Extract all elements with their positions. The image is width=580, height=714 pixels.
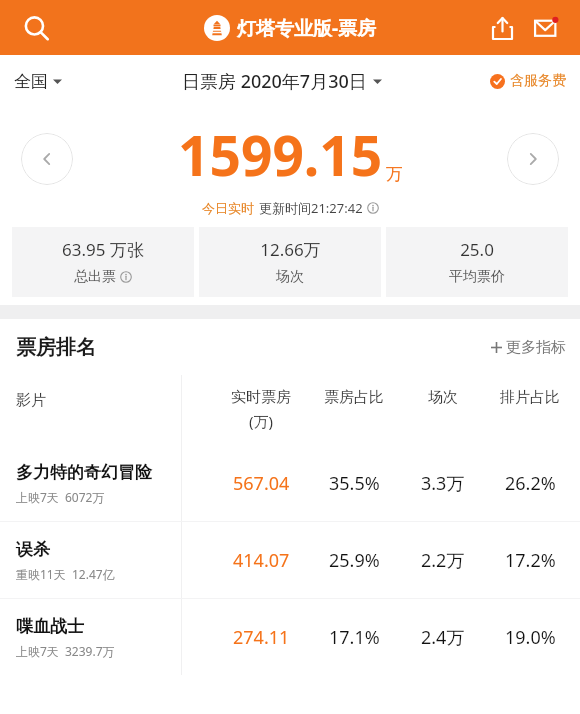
staticText: 12.47亿 (72, 566, 115, 582)
button[interactable]: 多力特的奇幻冒险 (0, 445, 580, 521)
staticText: 场次 (428, 388, 458, 407)
staticText: 场次 (276, 268, 304, 286)
staticText: 重映11天 (16, 566, 66, 582)
button[interactable]: 25.0 (386, 227, 568, 297)
staticText: 含服务费 (510, 72, 566, 90)
staticText: 实时票房 (231, 388, 291, 407)
staticText: 票房占比 (324, 388, 384, 407)
staticText: 12.66万 (260, 238, 321, 261)
staticText: 总出票 (74, 268, 116, 286)
staticText: 567.04 (233, 471, 290, 496)
button[interactable]: 日票房 2020年7月30日 (182, 69, 382, 94)
staticText: 影片 (16, 391, 46, 410)
staticText: 19.0% (505, 625, 556, 650)
staticText: 2.2万 (421, 548, 465, 573)
button[interactable]: 全国 (14, 71, 62, 92)
button[interactable]: Messages (524, 6, 568, 50)
staticText: 26.2% (505, 471, 556, 496)
staticText: 今日实时 (202, 200, 254, 216)
staticText: 票房排名 (16, 335, 96, 360)
staticText: 6072万 (65, 489, 105, 505)
staticText: 喋血战士 (16, 616, 84, 637)
staticText: 上映7天 (16, 489, 59, 505)
button[interactable]: 12.66万 (199, 227, 381, 297)
button[interactable]: Share (480, 6, 524, 50)
staticText: 排片占比 (500, 388, 560, 407)
staticText: 414.07 (233, 548, 290, 573)
staticText: 17.2% (505, 548, 556, 573)
button[interactable]: 误杀 (0, 522, 580, 598)
staticText: 25.9% (329, 548, 380, 573)
staticText: 多力特的奇幻冒险 (16, 462, 152, 483)
staticText: 17.1% (329, 625, 380, 650)
button[interactable]: 更多指标 (491, 338, 566, 357)
staticText: 3239.7万 (65, 643, 115, 659)
button[interactable]: Previous day (21, 133, 73, 185)
staticText: 误杀 (16, 539, 50, 560)
staticText: 1599.15 (178, 117, 383, 192)
staticText: 63.95 万张 (62, 238, 144, 261)
staticText: 日票房 2020年7月30日 (182, 69, 367, 94)
button[interactable]: 含服务费 (490, 72, 566, 90)
staticText: 上映7天 (16, 643, 59, 659)
button[interactable]: Next day (507, 133, 559, 185)
staticText: 平均票价 (449, 268, 505, 286)
staticText: 更新时间21:27:42 (259, 199, 363, 217)
staticText: 更多指标 (506, 338, 566, 357)
staticText: 35.5% (329, 471, 380, 496)
staticText: 25.0 (460, 238, 494, 261)
staticText: 灯塔专业版-票房 (237, 15, 377, 41)
staticText: 3.3万 (421, 471, 465, 496)
staticText: 全国 (14, 71, 48, 92)
staticText: 万 (386, 164, 403, 185)
staticText: (万) (249, 411, 274, 431)
staticText: 274.11 (233, 625, 290, 650)
staticText: 2.4万 (421, 625, 465, 650)
button[interactable]: 63.95 万张 (12, 227, 194, 297)
button[interactable]: Search (14, 6, 58, 50)
button[interactable]: 喋血战士 (0, 599, 580, 675)
